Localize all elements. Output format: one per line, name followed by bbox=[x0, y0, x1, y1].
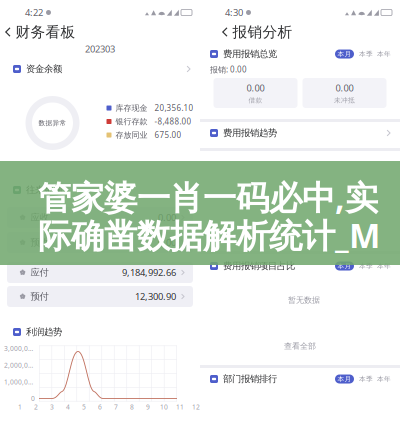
staticText: 3 bbox=[50, 403, 54, 411]
staticText: 本季 bbox=[359, 375, 373, 383]
staticText: 4:22 bbox=[25, 6, 43, 19]
staticText: 202303 bbox=[85, 43, 115, 55]
staticText: 12 bbox=[192, 403, 200, 411]
staticText: 本年 bbox=[377, 50, 391, 58]
staticText: 1 bbox=[18, 403, 22, 411]
staticText: 0.00 bbox=[246, 82, 264, 94]
staticText: 管家婆一肖一码必中,实 bbox=[38, 175, 378, 219]
staticText: 本月 bbox=[337, 262, 351, 270]
staticText: 0.00 bbox=[335, 82, 353, 94]
button[interactable]: 预付 bbox=[0, 286, 193, 307]
staticText: 费用报销趋势 bbox=[223, 127, 277, 139]
staticText: 资金余额 bbox=[26, 63, 62, 75]
staticText: 财务看板 bbox=[16, 23, 76, 41]
button[interactable]: 财务看板 bbox=[0, 23, 200, 41]
staticText: 暂无数据 bbox=[288, 295, 320, 305]
staticText: 675.00 bbox=[154, 130, 181, 140]
button[interactable]: 利润趋势 bbox=[0, 325, 200, 339]
button[interactable]: 本季 bbox=[359, 374, 373, 383]
staticText: 8 bbox=[130, 403, 134, 411]
staticText: 2 bbox=[34, 403, 38, 411]
staticText: -8,488.00 bbox=[154, 116, 191, 127]
staticText: 库存现金 bbox=[115, 103, 147, 113]
button[interactable]: 费用报销趋势 bbox=[200, 126, 400, 140]
button[interactable]: 预收 bbox=[0, 232, 193, 253]
button[interactable]: 本年 bbox=[377, 374, 391, 383]
staticText: 1,000,000 bbox=[4, 377, 35, 386]
staticText: 预付 bbox=[30, 291, 48, 302]
staticText: 数据异常 bbox=[38, 119, 66, 127]
button[interactable]: 部门报销排行 bbox=[200, 372, 400, 386]
staticText: 部门报销排行 bbox=[223, 373, 277, 385]
staticText: 应收 bbox=[30, 212, 48, 223]
staticText: 预收 bbox=[30, 237, 48, 248]
staticText: 本年 bbox=[377, 262, 391, 270]
staticText: 0.00 bbox=[158, 236, 176, 249]
staticText: 12,300.90 bbox=[135, 290, 176, 303]
staticText: 2,000,000 bbox=[4, 361, 35, 370]
button[interactable]: 本季 bbox=[359, 261, 373, 270]
staticText: 3,000,000 bbox=[4, 344, 35, 353]
staticText: 9,184,992.66 bbox=[122, 266, 176, 279]
staticText: 本月 bbox=[337, 50, 351, 58]
button[interactable]: 资金余额 bbox=[0, 62, 200, 76]
button[interactable]: 查看全部 bbox=[284, 341, 316, 351]
button[interactable]: 应收 bbox=[0, 207, 193, 228]
staticText: 未冲抵 bbox=[334, 96, 355, 104]
button[interactable]: 本月 bbox=[335, 374, 354, 383]
staticText: 4:30 bbox=[225, 6, 243, 19]
button[interactable]: 本年 bbox=[377, 49, 391, 58]
staticText: 4 bbox=[66, 403, 70, 411]
staticText: 费用报销项目占比 bbox=[223, 260, 295, 272]
staticText: 往来余额 bbox=[26, 184, 62, 196]
staticText: 本月 bbox=[337, 375, 351, 383]
staticText: 际确凿数据解析统计_M bbox=[38, 213, 380, 257]
staticText: 9 bbox=[146, 403, 150, 411]
staticText: 10 bbox=[160, 403, 168, 411]
staticText: 20,356.10 bbox=[154, 103, 193, 113]
staticText: 6 bbox=[98, 403, 102, 411]
staticText: 本季 bbox=[359, 50, 373, 58]
button[interactable]: 本月 bbox=[335, 49, 354, 58]
staticText: 银行存款 bbox=[115, 117, 147, 126]
staticText: 利润趋势 bbox=[26, 326, 62, 338]
button[interactable]: 本月 bbox=[335, 261, 354, 270]
button[interactable]: 往来余额 bbox=[0, 183, 200, 197]
staticText: 报销: 0.00 bbox=[210, 64, 247, 75]
staticText: 本年 bbox=[377, 375, 391, 383]
staticText: 借款 bbox=[248, 96, 262, 104]
staticText: 本季 bbox=[359, 262, 373, 270]
staticText: 0 bbox=[31, 394, 35, 403]
button[interactable]: 本季 bbox=[359, 49, 373, 58]
staticText: 存放同业 bbox=[115, 130, 147, 140]
staticText: 7 bbox=[114, 403, 118, 411]
staticText: 报销分析 bbox=[233, 23, 293, 41]
staticText: 查看全部 bbox=[284, 341, 316, 351]
staticText: 11 bbox=[176, 403, 184, 411]
button[interactable]: 报销分析 bbox=[200, 23, 400, 41]
button[interactable]: 本年 bbox=[377, 261, 391, 270]
staticText: 应付 bbox=[30, 267, 48, 278]
staticText: 5 bbox=[82, 403, 86, 411]
staticText: 0.00 bbox=[158, 211, 176, 224]
button[interactable]: 应付 bbox=[0, 262, 193, 283]
button[interactable]: 费用报销总览 bbox=[200, 47, 400, 61]
button[interactable]: 费用报销项目占比 bbox=[200, 259, 400, 273]
staticText: 费用报销总览 bbox=[223, 48, 277, 60]
